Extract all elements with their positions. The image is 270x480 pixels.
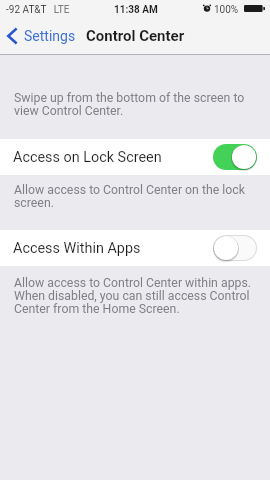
staticText: 100%: [214, 4, 239, 16]
staticText: Control Center: [86, 27, 185, 45]
staticText: Settings: [24, 28, 76, 44]
button[interactable]: Access Within Apps: [13, 230, 257, 266]
button[interactable]: Settings: [0, 18, 80, 54]
staticText: Access Within Apps: [13, 240, 141, 257]
staticText: Access on Lock Screen: [13, 149, 162, 166]
staticText: -92 AT&T LTE: [6, 4, 70, 16]
staticText: Swipe up from the bottom of the screen t…: [14, 91, 254, 118]
button[interactable]: Switch off: [213, 235, 257, 261]
staticText: 11:38 AM: [114, 4, 158, 16]
staticText: Allow access to Control Center on the lo…: [14, 183, 252, 210]
button[interactable]: Access on Lock Screen: [13, 139, 257, 175]
button[interactable]: Switch on: [213, 144, 257, 170]
staticText: Allow access to Control Center within ap…: [14, 276, 258, 316]
